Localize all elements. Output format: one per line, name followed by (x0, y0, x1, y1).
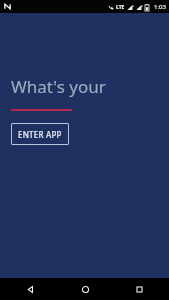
staticText: LTE (116, 4, 125, 11)
button[interactable]: Home (60, 278, 110, 300)
button[interactable]: Back (5, 278, 55, 300)
button[interactable]: Recent apps (114, 278, 164, 300)
staticText: What's your password? (11, 75, 167, 98)
staticText: ENTER APP (18, 129, 62, 140)
staticText: 1:03 (154, 3, 166, 11)
button[interactable]: ENTER APP (11, 123, 69, 145)
